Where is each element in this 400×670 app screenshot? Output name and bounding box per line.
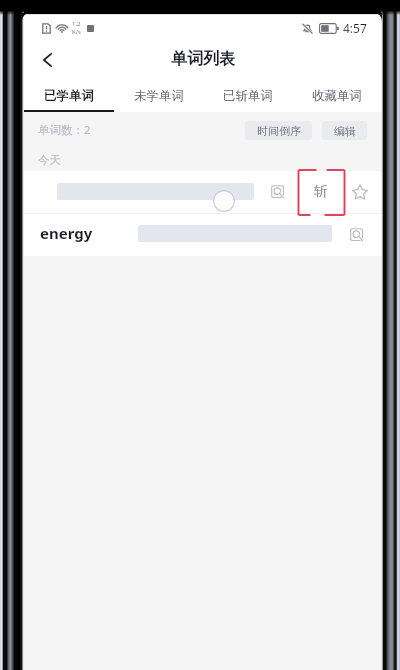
button[interactable]: 时间倒序	[245, 121, 312, 140]
staticText: 今天	[38, 153, 61, 167]
staticText: 已学单词	[44, 88, 94, 104]
button[interactable]: energy	[24, 214, 381, 255]
staticText: 编辑	[334, 124, 356, 138]
button[interactable]: 收藏单词	[292, 76, 381, 112]
staticText: 收藏单词	[312, 88, 362, 104]
staticText: 斩	[314, 183, 328, 201]
button[interactable]: 未学单词	[114, 76, 203, 112]
button[interactable]: 斩	[305, 171, 337, 213]
staticText: 时间倒序	[257, 124, 301, 138]
button[interactable]: Favorite	[346, 171, 374, 213]
button[interactable]: 编辑	[322, 121, 367, 140]
button[interactable]: Search	[344, 214, 370, 255]
button[interactable]: 已学单词	[24, 76, 114, 112]
staticText: 已斩单词	[223, 88, 273, 104]
button[interactable]: Back	[30, 42, 64, 76]
staticText: energy	[40, 223, 93, 243]
staticText: 单词数：2	[38, 122, 91, 138]
button[interactable]: Search	[264, 171, 291, 213]
staticText: K/s	[72, 28, 81, 36]
button[interactable]: Search	[24, 171, 381, 213]
staticText: 未学单词	[134, 88, 184, 104]
staticText: 4:57	[343, 20, 367, 36]
staticText: 1.2	[72, 20, 81, 28]
staticText: 单词列表	[171, 49, 235, 69]
button[interactable]: 已斩单词	[203, 76, 292, 112]
